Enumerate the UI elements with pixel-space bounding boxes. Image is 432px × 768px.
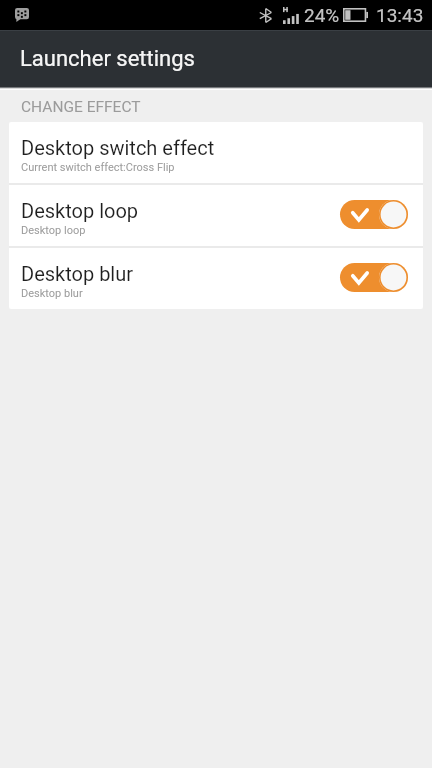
button[interactable]: Desktop blur xyxy=(9,248,423,309)
staticText: Desktop loop xyxy=(21,224,86,237)
button[interactable]: Desktop blur xyxy=(340,255,408,299)
staticText: Launcher settings xyxy=(20,46,195,72)
staticText: CHANGE EFFECT xyxy=(21,98,141,116)
button[interactable]: Desktop loop xyxy=(340,192,408,236)
staticText: Desktop loop xyxy=(21,199,139,222)
button[interactable]: Desktop loop xyxy=(9,185,423,246)
staticText: Desktop blur xyxy=(21,287,83,300)
staticText: 13:43 xyxy=(376,4,424,26)
staticText: Current switch effect:Cross Flip xyxy=(21,161,175,174)
button[interactable]: Desktop switch effect xyxy=(9,122,423,183)
staticText: 24% xyxy=(304,4,340,26)
staticText: Desktop switch effect xyxy=(21,136,215,159)
staticText: Desktop blur xyxy=(21,262,134,285)
